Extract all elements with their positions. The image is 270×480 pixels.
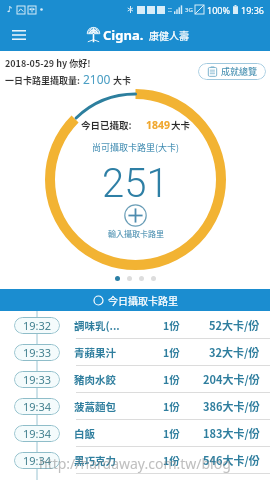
staticText: 3G [185, 6, 193, 14]
staticText: 今日攝取卡路里 [108, 293, 178, 307]
staticText: 183大卡/份 [203, 425, 260, 441]
button[interactable]: 19:34 [0, 420, 270, 446]
staticText: 19:34 [23, 453, 52, 468]
staticText: 大卡 [171, 118, 191, 132]
staticText: 251 [102, 160, 169, 207]
staticText: Cigna. [103, 26, 144, 44]
button[interactable]: Menu [8, 24, 30, 46]
staticText: 菠蒿麵包 [74, 399, 116, 414]
staticText: 1份 [163, 372, 180, 387]
staticText: 康健人壽 [149, 28, 189, 42]
staticText: 黑巧克力 [74, 453, 116, 468]
staticText: 386大卡/份 [203, 398, 260, 414]
staticText: :: [168, 5, 172, 15]
staticText: 今日已攝取: [81, 118, 132, 132]
staticText: 204大卡/份 [203, 371, 260, 387]
button[interactable]: 19:34 [0, 393, 270, 419]
staticText: 546大卡/份 [203, 452, 260, 468]
staticText: http://hardaway.com.tw/blog [39, 454, 231, 473]
staticText: 2018-05-29 hy 你好! [5, 57, 91, 70]
staticText: 32大卡/份 [209, 344, 260, 360]
staticText: 1份 [163, 318, 180, 333]
button[interactable]: 19:32 [0, 312, 270, 338]
button[interactable]: 成就總覽 [198, 63, 266, 80]
staticText: 19:32 [23, 318, 52, 333]
staticText: 19:33 [23, 372, 52, 387]
staticText: 19:34 [23, 426, 52, 441]
button[interactable]: Add calories [124, 204, 147, 227]
staticText: 一日卡路里攝取量: [5, 74, 80, 87]
button[interactable]: 19:33 [0, 366, 270, 392]
staticText: 19:36 [241, 4, 265, 16]
staticText: 19:34 [23, 399, 52, 414]
staticText: 輸入攝取卡路里 [108, 228, 164, 240]
button[interactable]: 19:34 [0, 447, 270, 473]
staticText: 1份 [163, 345, 180, 360]
staticText: 19:33 [23, 345, 52, 360]
staticText: 100% [207, 4, 230, 16]
staticText: 52大卡/份 [209, 317, 260, 333]
staticText: 1份 [163, 426, 180, 441]
staticText: 調味乳(... [74, 318, 120, 333]
staticText: 青蘋果汁 [74, 345, 116, 360]
staticText: 2100 [83, 71, 111, 87]
staticText: ♪ [7, 5, 13, 14]
staticText: 1份 [163, 453, 180, 468]
staticText: 成就總覽 [221, 65, 258, 78]
staticText: 1849 [146, 118, 171, 132]
staticText: 大卡 [113, 74, 132, 87]
staticText: 白飯 [74, 426, 95, 441]
button[interactable]: 19:33 [0, 339, 270, 365]
staticText: 尚可攝取卡路里(大卡) [92, 141, 180, 154]
staticText: 1份 [163, 399, 180, 414]
staticText: 豬肉水餃 [74, 372, 116, 387]
